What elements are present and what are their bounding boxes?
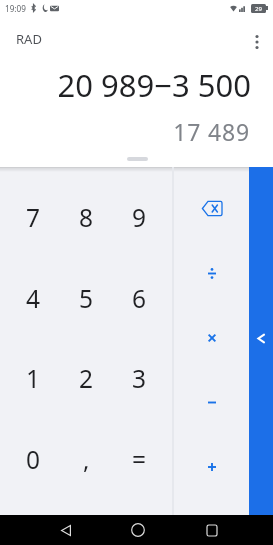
- staticText: 7: [26, 201, 41, 234]
- button[interactable]: plus: [174, 434, 249, 499]
- staticText: RAD: [16, 30, 42, 48]
- button[interactable]: Home: [119, 515, 156, 545]
- button[interactable]: 6: [113, 258, 166, 339]
- button[interactable]: 2: [60, 338, 113, 419]
- button[interactable]: 4: [7, 258, 60, 339]
- button[interactable]: 1: [7, 338, 60, 419]
- staticText: ,: [83, 443, 90, 476]
- staticText: 2: [79, 362, 94, 395]
- button[interactable]: Show more functions: [249, 167, 273, 515]
- button[interactable]: ,: [60, 419, 113, 500]
- button[interactable]: Back: [47, 515, 84, 545]
- staticText: 29: [255, 5, 262, 13]
- staticText: =: [132, 443, 147, 476]
- button[interactable]: times: [174, 305, 249, 370]
- button[interactable]: minus: [174, 370, 249, 435]
- button[interactable]: backspace: [174, 176, 249, 241]
- staticText: 9: [132, 201, 147, 234]
- button[interactable]: More options: [244, 29, 269, 54]
- staticText: 19:09: [5, 3, 26, 14]
- staticText: 20 989−3 500: [0, 64, 251, 106]
- button[interactable]: 0: [7, 419, 60, 500]
- staticText: 17 489: [0, 116, 250, 147]
- button[interactable]: =: [113, 419, 166, 500]
- button[interactable]: 8: [60, 177, 113, 258]
- staticText: 5: [79, 282, 94, 315]
- staticText: 3: [132, 362, 147, 395]
- button[interactable]: 7: [7, 177, 60, 258]
- staticText: 1: [26, 362, 41, 395]
- button[interactable]: 5: [60, 258, 113, 339]
- staticText: 0: [26, 443, 41, 476]
- staticText: 4: [26, 282, 41, 315]
- button[interactable]: 9: [113, 177, 166, 258]
- button[interactable]: 3: [113, 338, 166, 419]
- staticText: 8: [79, 201, 94, 234]
- button[interactable]: Recent apps: [193, 515, 230, 545]
- staticText: 6: [132, 282, 147, 315]
- button[interactable]: divide: [174, 241, 249, 306]
